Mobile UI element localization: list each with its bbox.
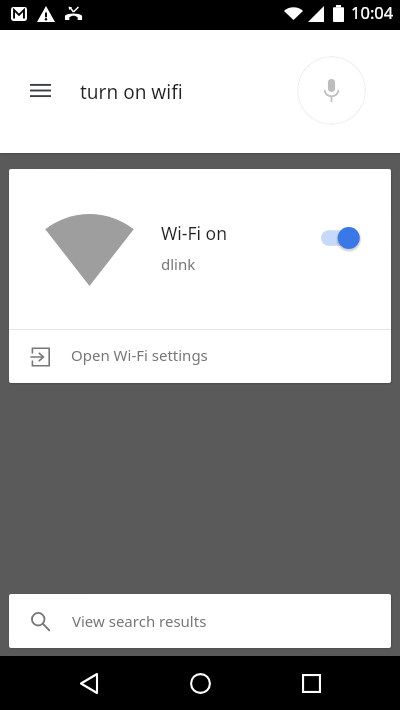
- staticText: Wi-Fi on: [161, 221, 227, 245]
- staticText: dlink: [161, 254, 196, 274]
- button[interactable]: Voice search: [297, 56, 366, 125]
- button[interactable]: View search results: [9, 594, 391, 648]
- staticText: turn on wifi: [80, 79, 183, 105]
- staticText: View search results: [72, 611, 207, 631]
- button[interactable]: Back: [67, 656, 111, 710]
- button[interactable]: Open Wi-Fi settings: [9, 330, 391, 383]
- button[interactable]: Menu: [18, 68, 62, 112]
- button[interactable]: Wi-Fi toggle: [305, 216, 363, 260]
- staticText: 10:04: [351, 1, 394, 23]
- button[interactable]: Recents: [289, 656, 333, 710]
- button[interactable]: Home: [178, 656, 222, 710]
- button[interactable]: turn on wifi: [66, 62, 286, 120]
- staticText: Open Wi-Fi settings: [71, 345, 208, 365]
